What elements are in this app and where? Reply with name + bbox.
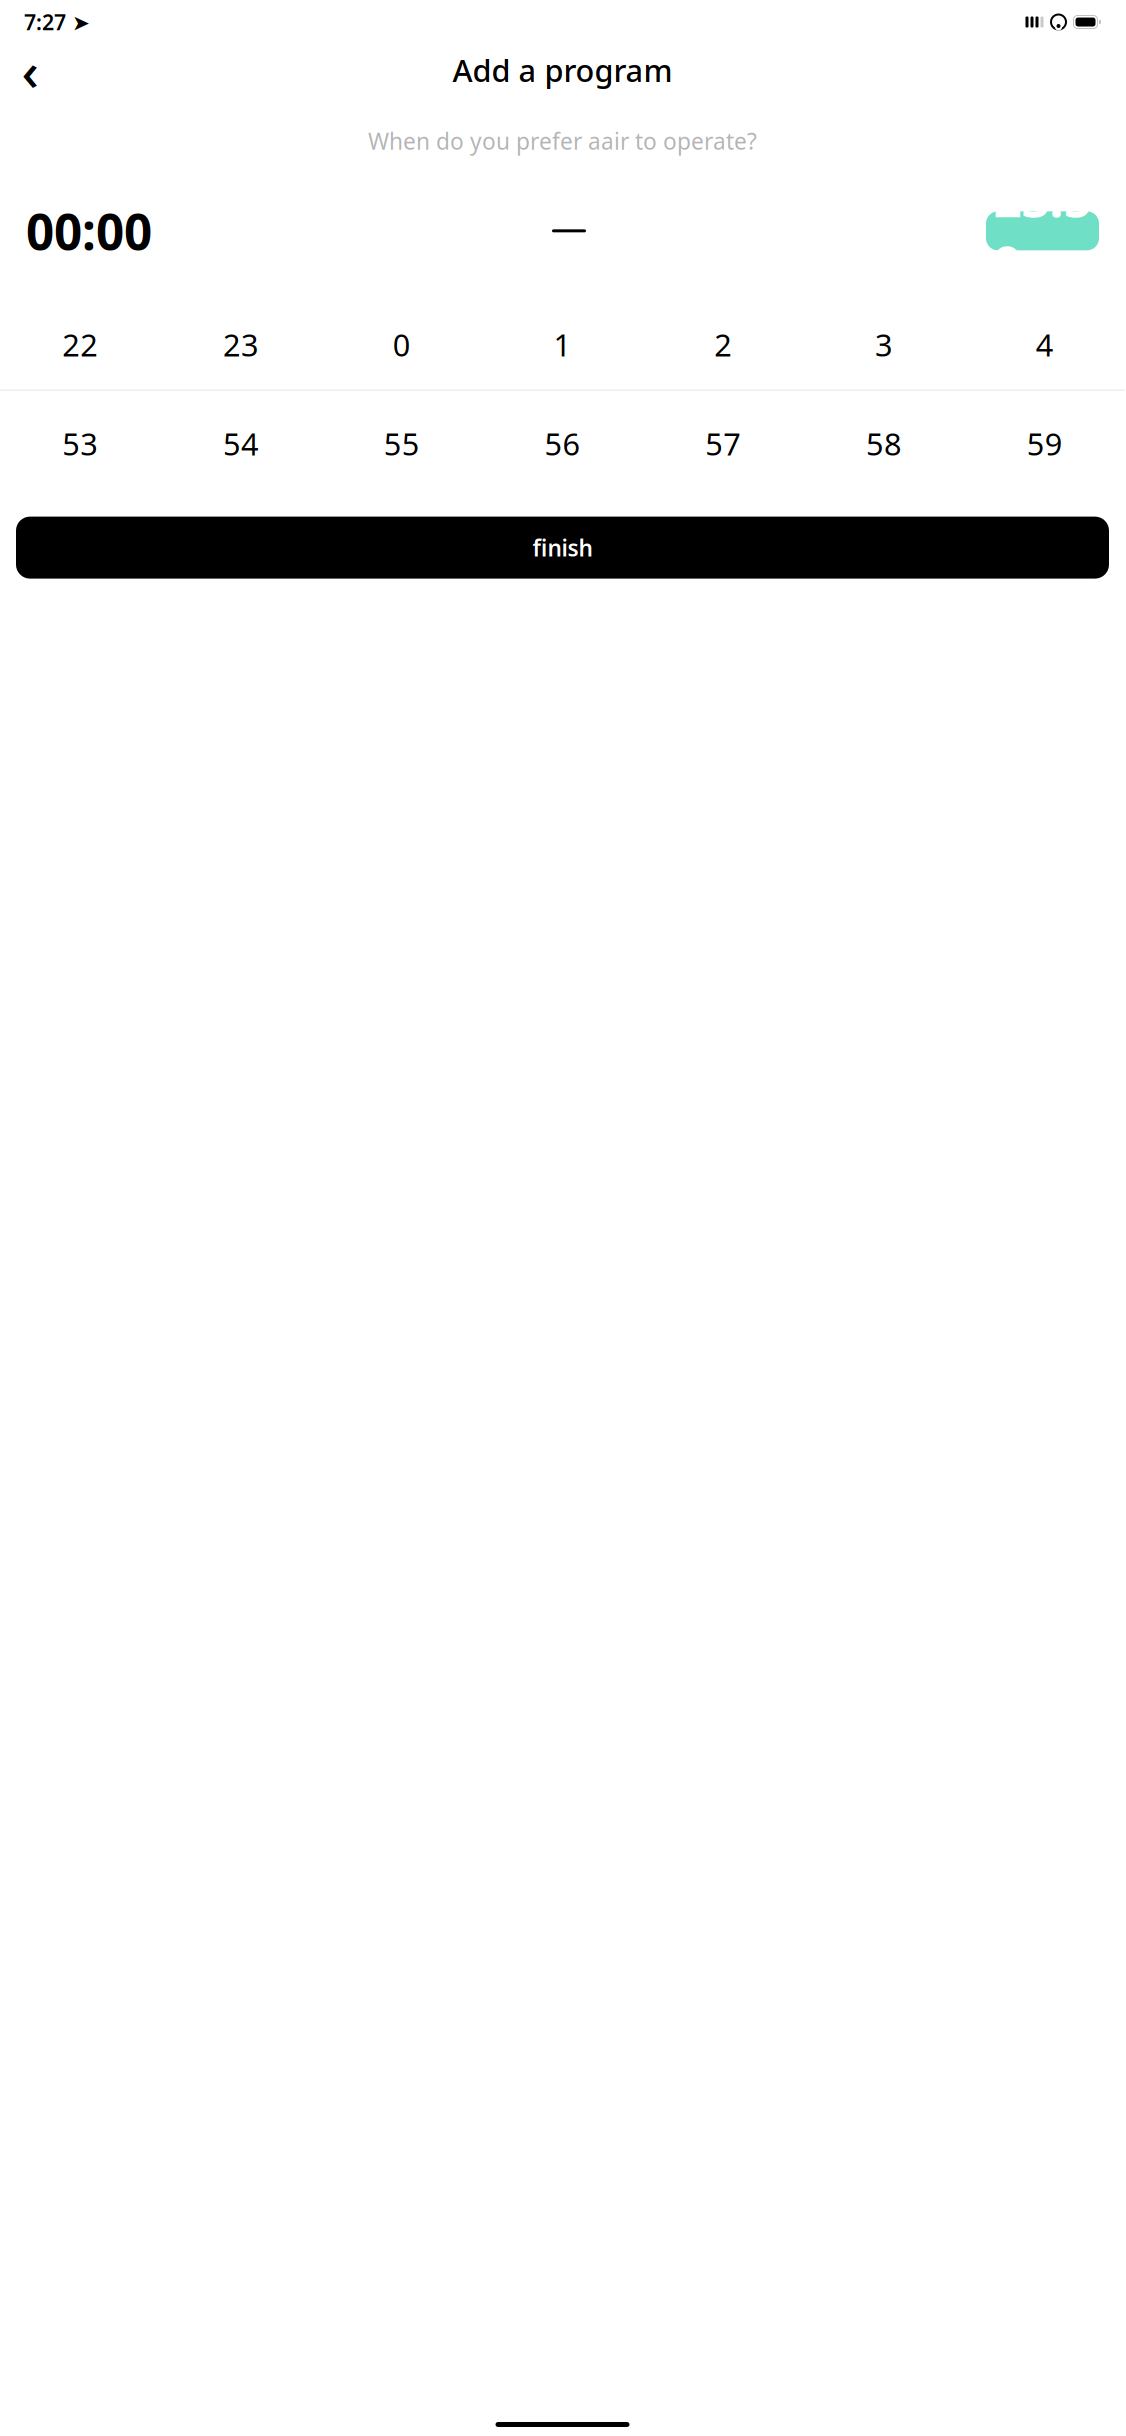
button[interactable]: Back	[8, 48, 52, 92]
staticText: 58	[866, 423, 902, 464]
button[interactable]: 59	[964, 415, 1125, 473]
staticText: 2	[714, 324, 732, 365]
button[interactable]: 58	[804, 415, 964, 473]
staticText: When do you prefer aair to operate?	[368, 126, 757, 156]
button[interactable]: 23	[161, 316, 321, 374]
button[interactable]: 4	[964, 316, 1125, 374]
button[interactable]: 0	[321, 316, 482, 374]
staticText: 00:00	[26, 198, 152, 264]
staticText: 0	[393, 324, 411, 365]
button[interactable]: 57	[643, 415, 804, 473]
staticText: 3	[875, 324, 893, 365]
staticText: finish	[532, 533, 592, 563]
staticText: 57	[705, 423, 741, 464]
staticText: Add a program	[452, 50, 672, 90]
staticText: 53	[62, 423, 98, 464]
button[interactable]: 23:59	[986, 211, 1099, 250]
staticText: 56	[544, 423, 580, 464]
button[interactable]: 22	[0, 316, 161, 374]
staticText: ‹	[21, 35, 38, 105]
button[interactable]: 3	[804, 316, 964, 374]
staticText: 1	[553, 324, 571, 365]
staticText: 55	[384, 423, 420, 464]
button[interactable]: 1	[482, 316, 643, 374]
staticText: 22	[62, 324, 98, 365]
staticText: 54	[223, 423, 259, 464]
button[interactable]: 2	[643, 316, 804, 374]
button[interactable]: finish	[16, 517, 1109, 579]
staticText: 59	[1027, 423, 1063, 464]
staticText: 23:59	[993, 165, 1091, 296]
button[interactable]: 54	[161, 415, 321, 473]
staticText: 7:27 ➤	[24, 8, 90, 36]
staticText: 23	[223, 324, 259, 365]
staticText: 4	[1036, 324, 1054, 365]
button[interactable]: 56	[482, 415, 643, 473]
button[interactable]: 55	[321, 415, 482, 473]
button[interactable]: 53	[0, 415, 161, 473]
